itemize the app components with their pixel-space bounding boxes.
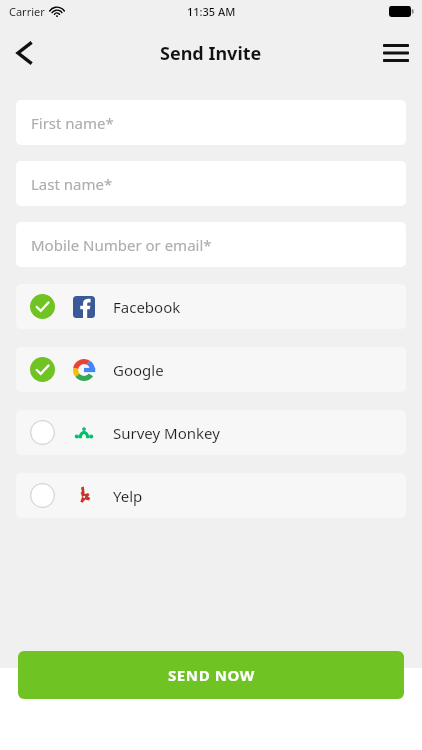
staticText: Last name*: [31, 174, 113, 194]
staticText: Facebook: [113, 297, 181, 317]
staticText: Mobile Number or email*: [31, 235, 212, 255]
staticText: First name*: [31, 113, 114, 133]
button[interactable]: Last name*: [16, 161, 406, 206]
button[interactable]: Back: [0, 29, 48, 77]
staticText: Survey Monkey: [113, 423, 220, 443]
button[interactable]: SEND NOW: [18, 651, 404, 699]
button[interactable]: Survey Monkey: [16, 410, 406, 455]
staticText: Carrier: [9, 4, 45, 19]
staticText: Send Invite: [160, 41, 262, 66]
button[interactable]: Mobile Number or email*: [16, 222, 406, 267]
button[interactable]: Yelp: [16, 473, 406, 518]
button[interactable]: First name*: [16, 100, 406, 145]
staticText: Yelp: [113, 486, 143, 506]
button[interactable]: Facebook: [16, 284, 406, 329]
button[interactable]: Google: [16, 347, 406, 392]
button[interactable]: Menu: [370, 27, 422, 79]
staticText: Google: [113, 360, 164, 380]
staticText: 11:35 AM: [187, 4, 236, 19]
staticText: SEND NOW: [168, 665, 255, 685]
